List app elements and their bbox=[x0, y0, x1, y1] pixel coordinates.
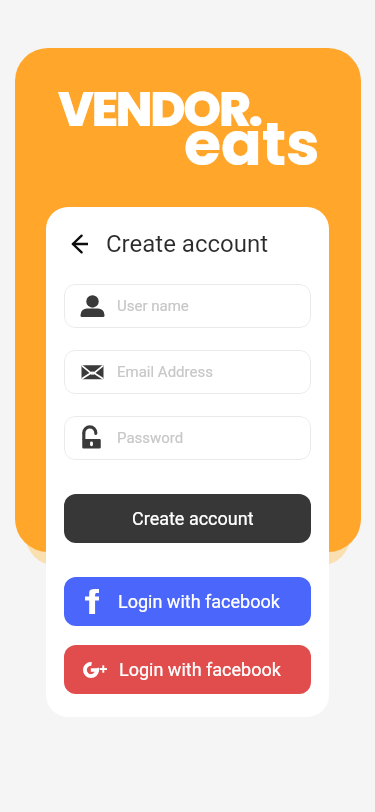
button[interactable]: Email Address bbox=[64, 350, 311, 394]
staticText: VENDOR. bbox=[58, 76, 261, 143]
staticText: User name bbox=[117, 297, 189, 315]
button[interactable]: Login with facebook bbox=[64, 645, 311, 694]
staticText: eats bbox=[184, 102, 320, 186]
button[interactable]: Create account bbox=[64, 494, 311, 543]
staticText: Create account bbox=[132, 508, 254, 529]
staticText: Password bbox=[117, 429, 184, 447]
staticText: Login with facebook bbox=[119, 659, 281, 680]
staticText: Email Address bbox=[117, 363, 213, 381]
button[interactable]: Login with facebook bbox=[64, 577, 311, 626]
staticText: Login with facebook bbox=[118, 591, 280, 612]
button[interactable]: User name bbox=[64, 284, 311, 328]
staticText: Create account bbox=[106, 230, 269, 258]
button[interactable]: Back bbox=[62, 226, 98, 262]
button[interactable]: Password bbox=[64, 416, 311, 460]
